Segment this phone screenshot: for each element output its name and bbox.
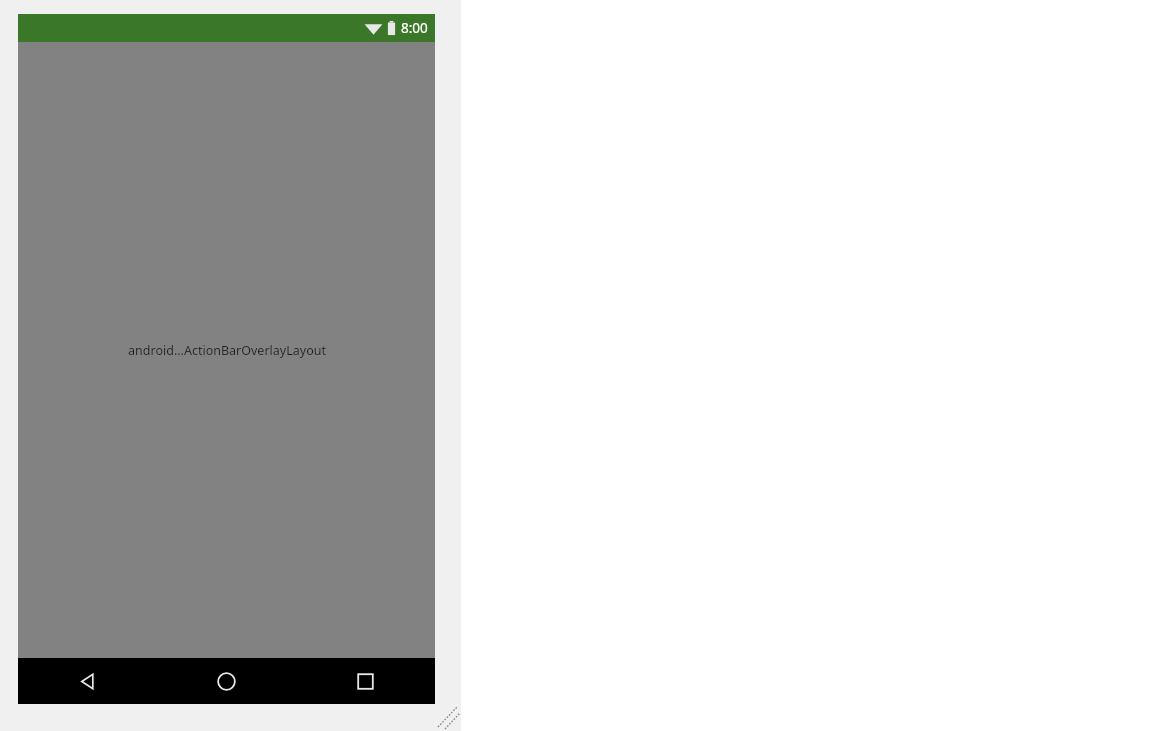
button[interactable]: Back: [18, 658, 157, 704]
staticText: android...ActionBarOverlayLayout: [128, 342, 326, 359]
other: Battery: [387, 20, 396, 36]
button[interactable]: Home: [157, 658, 296, 704]
other: Wi-Fi: [364, 21, 383, 36]
staticText: 8:00: [401, 19, 428, 37]
button[interactable]: Recent apps: [296, 658, 435, 704]
